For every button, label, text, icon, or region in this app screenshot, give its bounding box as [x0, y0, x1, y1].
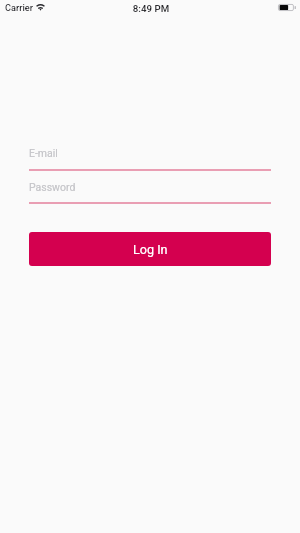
other: Wi-Fi signal — [36, 4, 45, 11]
other: Battery level — [278, 4, 296, 11]
staticText: Password — [29, 181, 76, 193]
staticText: 8:49 PM — [1, 3, 300, 14]
staticText: Log In — [133, 242, 168, 257]
staticText: Carrier — [5, 2, 33, 13]
button[interactable]: E-mail — [29, 143, 271, 171]
button[interactable]: Password — [29, 176, 271, 204]
staticText: E-mail — [29, 147, 58, 159]
button[interactable]: Log In — [29, 232, 271, 266]
